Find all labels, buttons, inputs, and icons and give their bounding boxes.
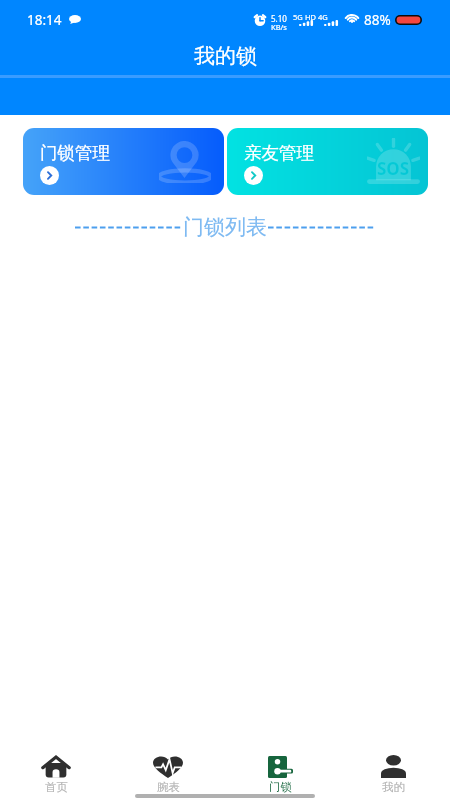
staticText: 88%	[364, 11, 391, 29]
button[interactable]: 门锁管理	[23, 128, 224, 195]
button[interactable]: 首页	[0, 755, 112, 794]
staticText: 门锁	[269, 780, 292, 794]
staticText: 门锁管理	[40, 142, 110, 164]
staticText: 腕表	[157, 780, 180, 794]
staticText: 亲友管理	[244, 142, 314, 164]
staticText: HD	[305, 12, 317, 22]
button[interactable]: 我的	[337, 755, 450, 794]
staticText: 我的锁	[194, 43, 257, 69]
button[interactable]: 腕表	[112, 755, 224, 794]
staticText: 我的	[382, 780, 405, 794]
staticText: 首页	[45, 780, 68, 794]
button[interactable]: 亲友管理	[227, 128, 428, 195]
staticText: 18:14	[27, 11, 62, 29]
button[interactable]: 门锁	[224, 755, 337, 794]
staticText: 4G	[318, 12, 328, 22]
staticText: 5G	[293, 12, 303, 22]
staticText: 5.10	[271, 13, 287, 24]
staticText: 门锁列表	[183, 214, 267, 240]
staticText: KB/s	[271, 22, 287, 32]
